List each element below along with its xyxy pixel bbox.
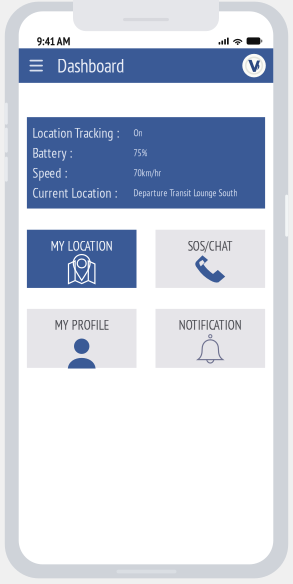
staticText: 9:41 AM xyxy=(37,34,71,48)
staticText: Battery : xyxy=(32,144,72,161)
staticText: Current Location : xyxy=(32,184,117,201)
button[interactable]: NOTIFICATION xyxy=(155,309,265,368)
button[interactable]: Menu xyxy=(25,48,47,83)
staticText: Departure Transit Lounge South xyxy=(133,187,237,199)
staticText: MY PROFILE xyxy=(55,317,109,333)
staticText: Speed : xyxy=(32,164,67,181)
button[interactable]: MY PROFILE xyxy=(27,309,136,368)
staticText: 75% xyxy=(133,147,147,159)
staticText: Dashboard xyxy=(57,53,124,78)
staticText: SOS/CHAT xyxy=(188,238,233,254)
button[interactable]: MY LOCATION xyxy=(27,230,136,288)
staticText: MY LOCATION xyxy=(51,238,113,254)
button[interactable]: Dashboard xyxy=(47,48,124,83)
staticText: On xyxy=(133,127,142,139)
button[interactable]: SOS/CHAT xyxy=(155,230,265,288)
staticText: NOTIFICATION xyxy=(179,317,242,333)
staticText: Location Tracking : xyxy=(32,124,119,141)
button[interactable]: Account xyxy=(242,54,266,77)
staticText: 70km/hr xyxy=(133,167,161,179)
